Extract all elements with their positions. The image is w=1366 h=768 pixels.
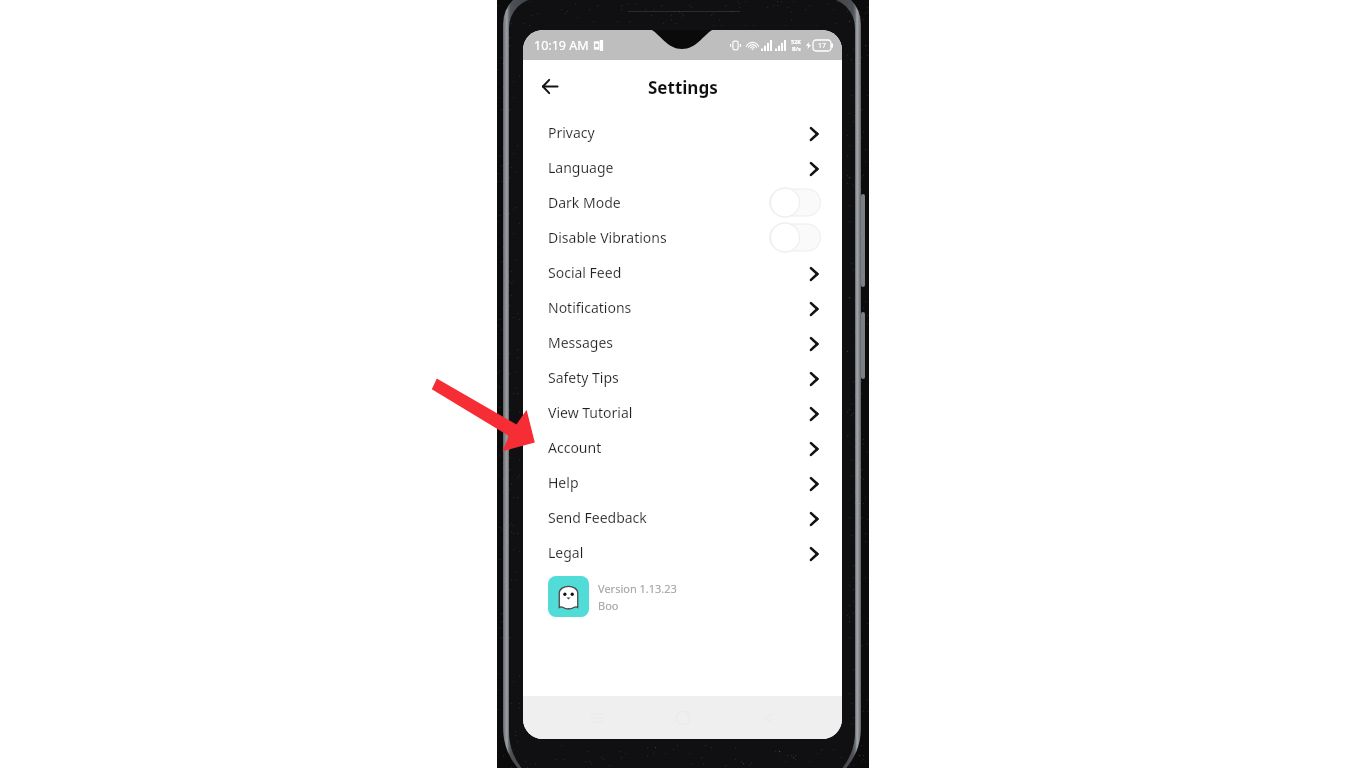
staticText: Social Feed (548, 263, 622, 282)
staticText: Language (548, 158, 614, 177)
button[interactable]: Toggle (769, 187, 821, 218)
staticText: Dark Mode (548, 193, 621, 212)
staticText: Notifications (548, 298, 632, 317)
button[interactable]: Account (523, 430, 842, 465)
button[interactable]: Language (523, 150, 842, 185)
staticText: View Tutorial (548, 403, 633, 422)
button[interactable]: View Tutorial (523, 395, 842, 430)
button[interactable]: Back (533, 69, 567, 103)
staticText: Version 1.13.23 (598, 581, 677, 596)
staticText: Messages (548, 333, 614, 352)
button[interactable]: Social Feed (523, 255, 842, 290)
staticText: Safety Tips (548, 368, 619, 387)
staticText: 10:19 AM (534, 37, 589, 54)
button[interactable]: Toggle (769, 222, 821, 253)
button[interactable]: Safety Tips (523, 360, 842, 395)
button[interactable]: Notifications (523, 290, 842, 325)
staticText: Help (548, 473, 579, 492)
staticText: B/s (792, 45, 801, 52)
button[interactable]: Help (523, 465, 842, 500)
button[interactable]: Dark Mode (523, 185, 842, 220)
button[interactable]: Disable Vibrations (523, 220, 842, 255)
staticText: Boo (598, 598, 619, 613)
staticText: Send Feedback (548, 508, 647, 527)
staticText: Privacy (548, 123, 595, 142)
staticText: Disable Vibrations (548, 228, 667, 247)
staticText: Account (548, 438, 602, 457)
button[interactable]: Legal (523, 535, 842, 570)
staticText: 52K (791, 38, 801, 45)
button[interactable]: Messages (523, 325, 842, 360)
staticText: 17 (818, 41, 827, 51)
staticText: Settings (648, 76, 718, 99)
staticText: Legal (548, 543, 584, 562)
button[interactable]: Send Feedback (523, 500, 842, 535)
button[interactable]: Privacy (523, 115, 842, 150)
